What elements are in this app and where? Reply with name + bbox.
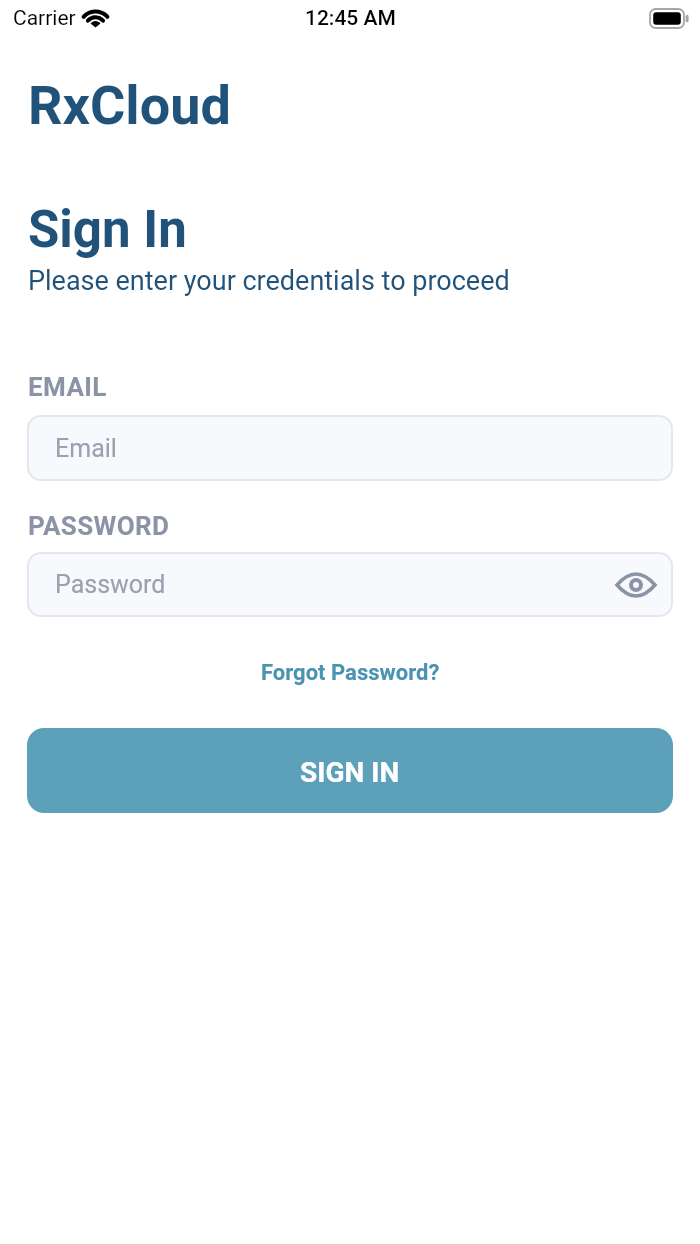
staticText: Please enter your credentials to proceed: [28, 265, 510, 297]
button[interactable]: [615, 568, 657, 602]
staticText: Forgot Password?: [261, 660, 440, 686]
staticText: Email: [55, 434, 117, 463]
staticText: SIGN IN: [300, 756, 400, 789]
staticText: Sign In: [28, 200, 187, 260]
staticText: RxCloud: [28, 74, 231, 137]
staticText: EMAIL: [28, 372, 107, 402]
button[interactable]: Email: [27, 415, 673, 481]
button[interactable]: SIGN IN: [27, 728, 673, 813]
staticText: Carrier: [13, 6, 76, 31]
staticText: Password: [55, 570, 166, 599]
button[interactable]: Forgot Password?: [255, 660, 446, 686]
staticText: PASSWORD: [28, 511, 170, 541]
button[interactable]: Password: [27, 552, 673, 617]
staticText: 12:45 AM: [305, 6, 396, 31]
